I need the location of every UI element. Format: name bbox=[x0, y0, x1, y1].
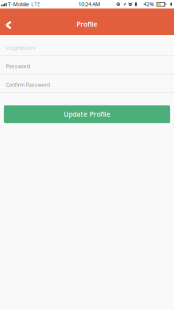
staticText: Update Profile bbox=[63, 110, 110, 119]
staticText: 42% bbox=[144, 1, 154, 8]
button[interactable]: Password bbox=[0, 56, 174, 75]
staticText: Profile bbox=[76, 20, 97, 29]
button[interactable]: vtxgridstore bbox=[0, 38, 174, 56]
staticText: 10:24 AM bbox=[78, 1, 100, 8]
staticText: Password bbox=[6, 63, 30, 70]
staticText: vtxgridstore bbox=[6, 44, 36, 51]
button[interactable]: Confirm Password bbox=[0, 75, 174, 93]
staticText: Confirm Password bbox=[6, 81, 50, 88]
button[interactable]: Update Profile bbox=[4, 105, 170, 123]
staticText: T-Mobile bbox=[8, 1, 29, 8]
button[interactable]: Back bbox=[0, 12, 17, 32]
staticText: LTE bbox=[31, 1, 40, 8]
